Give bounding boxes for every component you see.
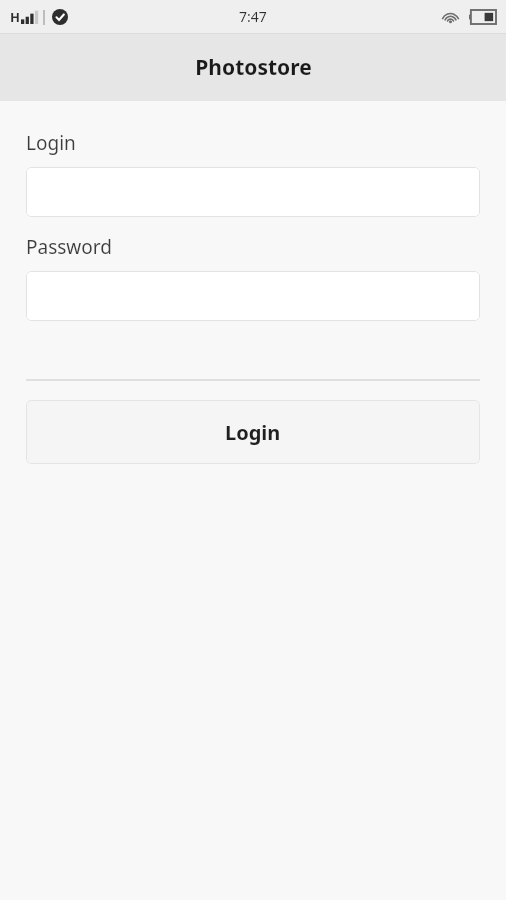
button[interactable]: Text input field: [26, 271, 480, 321]
staticText: H: [10, 8, 20, 26]
staticText: Photostore: [195, 53, 312, 82]
staticText: Login: [225, 419, 281, 446]
staticText: Login: [26, 130, 76, 156]
button[interactable]: Text input field: [26, 167, 480, 217]
staticText: Password: [26, 234, 112, 260]
staticText: 7:47: [239, 7, 267, 26]
button[interactable]: Login: [26, 400, 480, 464]
